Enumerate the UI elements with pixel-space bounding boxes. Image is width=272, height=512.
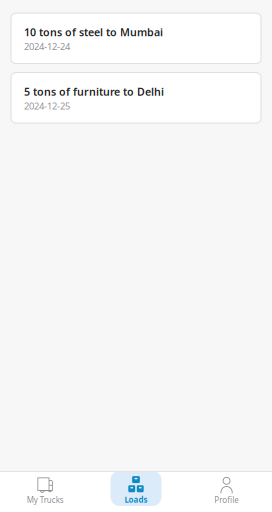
staticText: Profile [214,495,239,505]
button[interactable]: Loads [91,471,181,512]
staticText: My Trucks [27,495,64,505]
button[interactable]: 10 tons of steel to Mumbai [11,13,261,64]
staticText: 2024-12-25 [24,100,70,112]
staticText: 10 tons of steel to Mumbai [24,25,163,39]
button[interactable]: Profile [181,471,272,512]
staticText: 2024-12-24 [24,40,70,53]
button[interactable]: My Trucks [0,471,91,512]
staticText: Loads [124,494,147,505]
staticText: 5 tons of furniture to Delhi [24,85,164,99]
button[interactable]: 5 tons of furniture to Delhi [11,73,261,123]
